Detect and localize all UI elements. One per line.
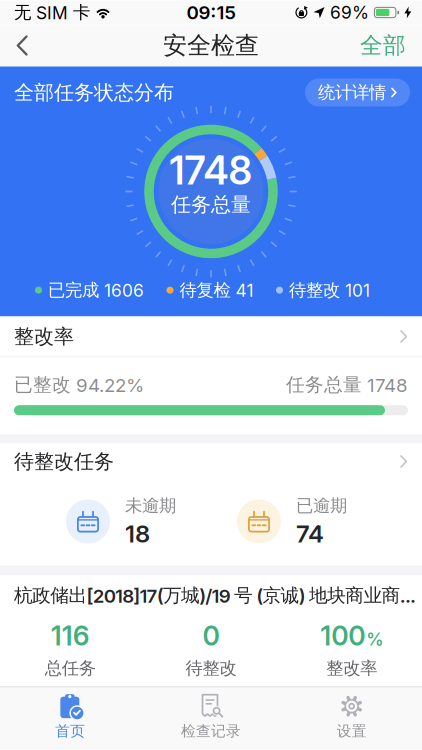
staticText: 整改率: [326, 657, 377, 679]
staticText: 已逾期: [296, 495, 347, 516]
staticText: 首页: [55, 722, 85, 740]
staticText: 待复检 41: [179, 279, 253, 301]
staticText: 全部: [360, 32, 406, 59]
staticText: 统计详情: [318, 82, 386, 103]
staticText: 74: [296, 519, 324, 548]
staticText: 18: [125, 519, 150, 548]
staticText: 已整改 94.22%: [14, 373, 144, 396]
staticText: 已完成 1606: [48, 279, 144, 301]
staticText: 69%: [330, 2, 369, 23]
staticText: 116: [51, 620, 90, 652]
staticText: %: [366, 629, 383, 649]
staticText: 任务总量 1748: [286, 373, 408, 396]
staticText: 检查记录: [181, 722, 241, 740]
staticText: 杭政储出[2018]17(万城)/19 号 (京诚) 地块商业商...: [14, 584, 416, 607]
staticText: 1748: [169, 148, 252, 193]
staticText: 总任务: [45, 657, 96, 679]
staticText: 全部任务状态分布: [14, 80, 174, 105]
staticText: 设置: [337, 722, 367, 740]
staticText: 0: [202, 620, 219, 652]
staticText: 任务总量: [171, 192, 251, 217]
staticText: 待整改 101: [289, 279, 370, 301]
staticText: 待整改任务: [14, 449, 114, 474]
staticText: 100: [320, 620, 365, 652]
staticText: 待整改: [185, 657, 236, 679]
staticText: 安全检查: [163, 31, 259, 60]
staticText: 未逾期: [125, 495, 176, 516]
staticText: 整改率: [14, 324, 74, 349]
staticText: 无 SIM 卡: [14, 2, 90, 23]
staticText: 09:15: [186, 1, 235, 23]
